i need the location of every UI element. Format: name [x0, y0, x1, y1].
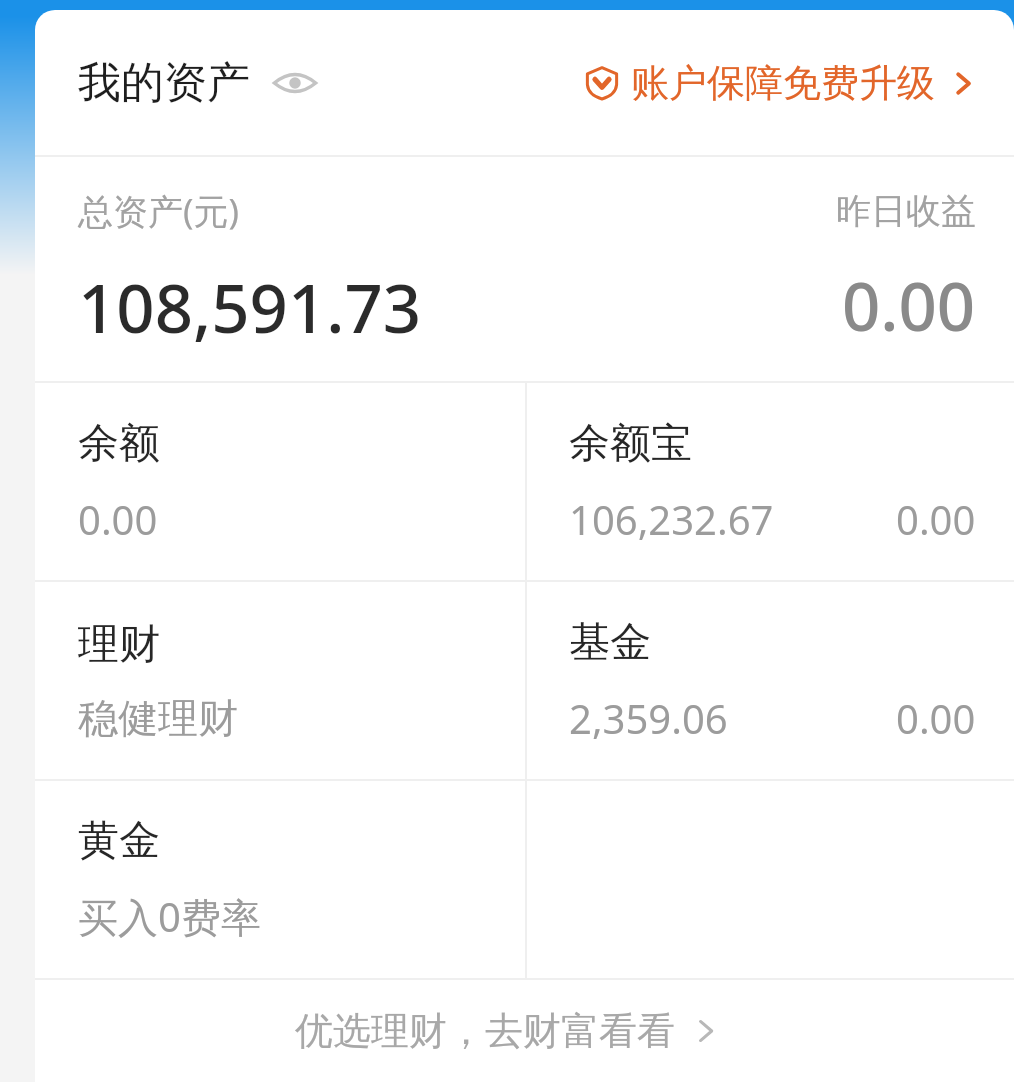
staticText: 2,359.06: [569, 691, 728, 745]
button[interactable]: 基金: [527, 582, 1014, 779]
button[interactable]: 余额宝: [527, 383, 1014, 580]
other: Toggle balance visibility: [272, 60, 318, 106]
button[interactable]: 我的资产: [78, 46, 318, 120]
staticText: 买入0费率: [78, 889, 261, 944]
staticText: 优选理财，去财富看看: [295, 1007, 675, 1055]
button[interactable]: 理财: [35, 582, 525, 779]
button[interactable]: 余额: [35, 383, 525, 580]
staticText: 余额: [78, 418, 160, 470]
staticText: 0.00: [896, 492, 976, 546]
staticText: 0.00: [78, 492, 158, 546]
staticText: 基金: [569, 617, 651, 669]
staticText: 总资产(元): [78, 187, 240, 235]
staticText: 我的资产: [78, 56, 250, 110]
button[interactable]: 优选理财，去财富看看: [35, 980, 1014, 1082]
staticText: 账户保障免费升级: [631, 59, 935, 107]
button[interactable]: 黄金: [35, 781, 525, 978]
staticText: 余额宝: [569, 418, 692, 470]
staticText: 昨日收益: [836, 189, 976, 233]
staticText: 黄金: [78, 815, 160, 867]
staticText: 108,591.73: [78, 261, 422, 352]
staticText: 106,232.67: [569, 492, 774, 546]
button[interactable]: 账户保障免费升级: [585, 47, 976, 119]
staticText: 0.00: [842, 259, 976, 350]
button[interactable]: 总资产(元): [35, 157, 1014, 381]
staticText: 理财: [78, 619, 160, 671]
staticText: 0.00: [896, 691, 976, 745]
staticText: 稳健理财: [78, 693, 238, 743]
